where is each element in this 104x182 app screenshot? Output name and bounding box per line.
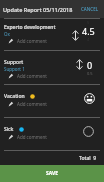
button[interactable]: CANCEL [79,3,101,15]
staticText: 4.5 [82,25,95,37]
staticText: Support [4,59,24,66]
staticText: Ox [4,31,10,37]
staticText: Experto development [4,24,56,31]
staticText: Vacation [4,93,25,100]
staticText: Sick [4,126,14,133]
button[interactable]: Experto development [0,19,104,50]
staticText: Add comment [17,101,47,107]
button[interactable]: Adjust hours [72,30,79,41]
staticText: SAVE [46,170,59,177]
staticText: 0.5 [87,71,93,76]
staticText: 4 [87,37,90,42]
button[interactable]: Add comment [4,101,104,107]
staticText: Add comment [17,38,47,44]
button[interactable]: Add comment [4,134,104,140]
button[interactable]: Vacation [0,85,104,117]
staticText: Support 1 [4,66,25,72]
staticText: 5 [87,20,90,25]
button[interactable]: Add comment [4,38,104,44]
staticText: CANCEL [81,6,99,12]
button[interactable]: SAVE [0,165,104,182]
button[interactable]: Sick [0,118,104,150]
button[interactable]: Adjust hours [76,59,83,70]
staticText: Add comment [17,73,47,79]
button[interactable]: Support [0,51,104,84]
staticText: 0 [87,59,93,71]
staticText: Add comment [17,134,47,140]
staticText: Total 9 [79,155,97,162]
staticText: Update Report 05/11/2018 [3,6,79,13]
button[interactable]: Mood [83,126,94,137]
button[interactable]: Mood: happy [84,93,95,104]
button[interactable]: Add comment [4,73,104,79]
